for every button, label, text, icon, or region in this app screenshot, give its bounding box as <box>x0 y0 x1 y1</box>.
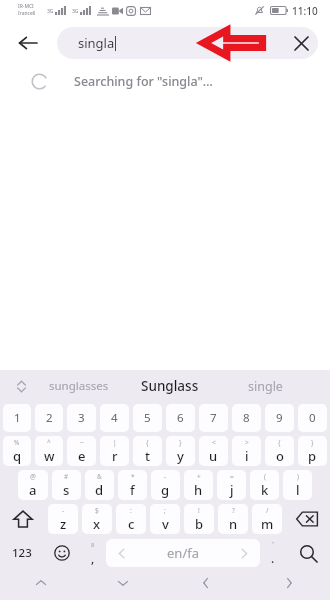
button[interactable]: 5 <box>133 404 162 432</box>
button[interactable]: 8 <box>80 538 106 568</box>
staticText: m <box>261 515 274 533</box>
staticText: ? <box>232 506 235 515</box>
staticText: q <box>13 447 22 465</box>
button[interactable]: Shift <box>0 504 46 534</box>
staticText: z <box>60 515 67 533</box>
staticText: n <box>229 515 238 533</box>
button[interactable]: * <box>118 470 147 500</box>
button[interactable]: Move down <box>82 570 164 596</box>
button[interactable]: 2 <box>35 404 63 432</box>
button[interactable]: Search <box>286 538 330 568</box>
button[interactable]: % <box>3 436 31 466</box>
staticText: single <box>248 378 283 395</box>
staticText: # <box>64 472 69 481</box>
button[interactable]: ~ <box>67 436 96 466</box>
button[interactable]: ) <box>283 470 312 500</box>
staticText: r <box>112 447 118 465</box>
staticText: t <box>145 447 150 465</box>
button[interactable]: Move right <box>247 570 330 596</box>
staticText: c <box>128 515 135 533</box>
button[interactable]: ( <box>250 470 279 500</box>
button[interactable]: single <box>222 370 308 402</box>
button[interactable]: Move up <box>0 570 82 596</box>
button[interactable]: { <box>133 436 162 466</box>
button[interactable]: ^ <box>35 436 63 466</box>
button[interactable]: singla <box>57 27 318 59</box>
staticText: > <box>245 438 249 447</box>
button[interactable]: Expand suggestions <box>8 370 34 402</box>
button[interactable]: 3 <box>67 404 96 432</box>
staticText: , <box>91 550 95 566</box>
button[interactable]: > <box>232 436 261 466</box>
staticText: 7 <box>210 410 217 426</box>
staticText: . <box>271 550 275 566</box>
button[interactable]: en/fa <box>106 539 260 567</box>
staticText: / <box>266 506 269 515</box>
button[interactable]: < <box>199 436 228 466</box>
button[interactable]: / <box>252 504 282 534</box>
button[interactable]: @ <box>18 470 48 500</box>
staticText: 2 <box>46 410 53 426</box>
button[interactable]: = <box>217 470 246 500</box>
button[interactable]: 7 <box>199 404 228 432</box>
staticText: : <box>130 506 132 515</box>
button[interactable]: 1 <box>3 404 31 432</box>
staticText: u <box>209 447 218 465</box>
button[interactable]: ? <box>218 504 248 534</box>
staticText: l <box>296 481 300 499</box>
staticText: singla <box>78 34 115 52</box>
staticText: j <box>230 481 234 499</box>
button[interactable]: # <box>52 470 81 500</box>
button[interactable]: - <box>151 470 180 500</box>
staticText: ! <box>198 506 200 515</box>
staticText: en/fa <box>167 544 199 562</box>
staticText: 8 <box>243 410 250 426</box>
staticText: % <box>14 438 20 447</box>
staticText: x <box>93 515 101 533</box>
staticText: b <box>195 515 204 533</box>
button[interactable]: " <box>260 538 286 568</box>
staticText: 3 <box>78 410 85 426</box>
staticText: 3G <box>47 8 54 15</box>
button[interactable]: 4 <box>100 404 129 432</box>
button[interactable]: Backspace <box>284 504 330 534</box>
button[interactable]: | <box>100 436 129 466</box>
staticText: ^ <box>47 438 51 447</box>
staticText: i <box>245 447 249 465</box>
button[interactable]: ; <box>150 504 180 534</box>
staticText: { <box>146 438 149 447</box>
button[interactable]: Back <box>6 22 50 64</box>
button[interactable]: } <box>166 436 195 466</box>
staticText: ~ <box>80 438 84 447</box>
staticText: ; <box>164 506 166 515</box>
button[interactable]: Emoji <box>44 538 80 568</box>
button[interactable]: & <box>85 470 114 500</box>
staticText: - <box>164 472 167 481</box>
staticText: p <box>308 447 317 465</box>
button[interactable]: 6 <box>166 404 195 432</box>
staticText: 5 <box>144 410 151 426</box>
button[interactable]: } <box>298 436 327 466</box>
button[interactable]: 0 <box>298 404 327 432</box>
button[interactable]: Move left <box>164 570 247 596</box>
staticText: 9 <box>276 410 283 426</box>
button[interactable]: + <box>184 470 213 500</box>
button[interactable]: 9 <box>265 404 294 432</box>
staticText: $ <box>95 506 99 515</box>
staticText: k <box>261 481 269 499</box>
button[interactable]: 123 <box>0 538 44 568</box>
button[interactable]: Sunglass <box>126 370 214 402</box>
button[interactable]: $ <box>82 504 112 534</box>
button[interactable]: - <box>48 504 78 534</box>
button[interactable]: ! <box>184 504 214 534</box>
staticText: { <box>278 438 281 447</box>
staticText: ( <box>264 472 266 481</box>
button[interactable]: 8 <box>232 404 261 432</box>
button[interactable]: { <box>265 436 294 466</box>
staticText: a <box>29 481 37 499</box>
staticText: 6 <box>177 410 184 426</box>
button[interactable]: sunglasses <box>36 370 122 402</box>
staticText: Sunglass <box>141 377 199 395</box>
button[interactable]: Clear search <box>284 27 318 59</box>
button[interactable]: : <box>116 504 146 534</box>
